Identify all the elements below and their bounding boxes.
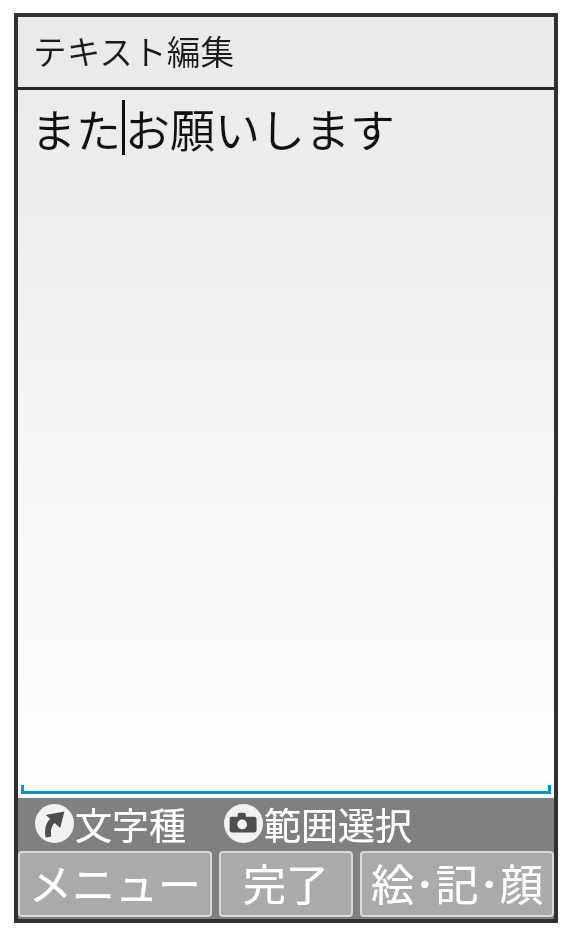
button[interactable]: メニュー — [20, 853, 210, 915]
button[interactable]: 範囲選択 — [224, 797, 412, 850]
staticText: メニュー — [29, 853, 201, 913]
staticText: 完了 — [243, 853, 329, 913]
button[interactable]: 絵･記･顔 — [362, 853, 552, 915]
staticText: 文字種 — [75, 797, 186, 850]
button[interactable]: テキスト編集 — [18, 17, 554, 87]
button[interactable]: 完了 — [221, 853, 351, 915]
staticText: 範囲選択 — [264, 797, 412, 850]
staticText: 絵･記･顔 — [371, 853, 543, 913]
staticText: また — [31, 96, 122, 161]
button[interactable]: 文字種 — [35, 797, 186, 850]
staticText: テキスト編集 — [33, 26, 235, 75]
staticText: お願いします — [125, 96, 396, 161]
